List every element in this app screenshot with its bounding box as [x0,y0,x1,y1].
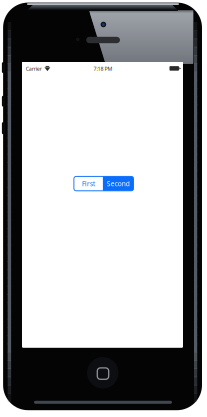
staticText: 7:18 PM [93,65,112,72]
staticText: Carrier [26,65,42,72]
button[interactable]: First [74,176,103,191]
button[interactable]: Second [103,176,133,191]
staticText: Second [107,179,130,188]
staticText: First [82,179,95,188]
